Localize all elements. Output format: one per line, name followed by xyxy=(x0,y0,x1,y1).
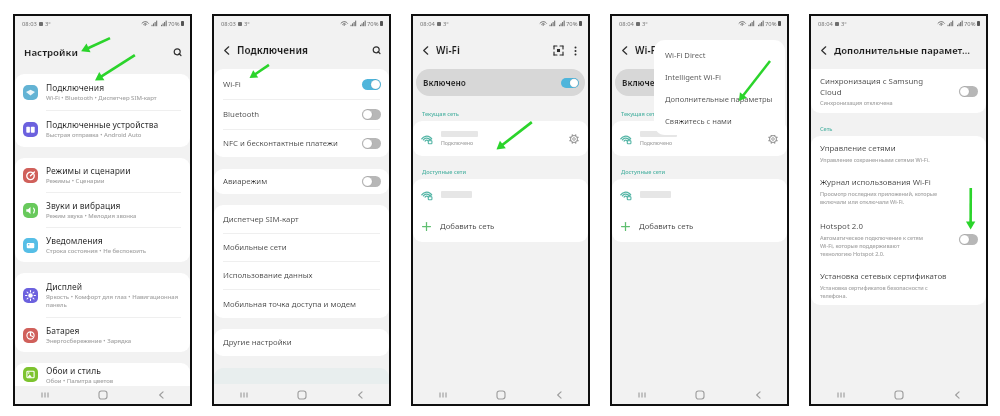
button[interactable]: Recent apps xyxy=(214,386,273,404)
staticText: 70% xyxy=(964,20,976,28)
button[interactable]: Recent apps xyxy=(811,386,870,404)
button[interactable]: Back xyxy=(618,44,631,57)
staticText: Свяжитесь с нами xyxy=(665,116,732,126)
staticText: Мобильная точка доступа и модем xyxy=(223,299,381,310)
button[interactable]: Подключения xyxy=(15,74,190,110)
button[interactable]: Toggle xyxy=(362,79,381,90)
button[interactable]: Использование данных xyxy=(214,262,389,289)
button[interactable]: Авиарежим xyxy=(214,169,389,194)
staticText: Диспетчер SIM-карт xyxy=(223,214,381,225)
staticText: Быстрая отправка • Android Auto xyxy=(46,131,142,139)
button[interactable]: Мобильная точка доступа и модем xyxy=(214,290,389,318)
button[interactable]: Включено xyxy=(615,69,784,96)
staticText: Wi-Fi xyxy=(223,79,362,90)
button[interactable]: Toggle xyxy=(362,138,381,149)
staticText: Дополнительные парамет… xyxy=(834,44,980,57)
button[interactable]: Добавить сеть xyxy=(612,210,787,242)
staticText: Синхронизация отключена xyxy=(820,99,893,106)
staticText: Bluetooth xyxy=(223,109,362,120)
button[interactable]: Диспетчер SIM-карт xyxy=(214,205,389,233)
button[interactable]: Другие настройки xyxy=(214,329,389,356)
button[interactable]: Свяжитесь с нами xyxy=(665,110,785,132)
staticText: Установка сертификатов безопасности с те… xyxy=(820,284,948,300)
staticText: Синхронизация с Samsung Cloud xyxy=(820,76,926,97)
button[interactable]: Toggle xyxy=(362,176,381,187)
button[interactable]: NFC и бесконтактные платежи xyxy=(214,130,389,157)
button[interactable]: Back xyxy=(729,386,787,404)
staticText: Сеть xyxy=(820,125,833,133)
button[interactable]: Recent apps xyxy=(413,386,472,404)
button[interactable]: Подключено xyxy=(612,121,787,156)
staticText: Авиарежим xyxy=(223,176,362,187)
button[interactable]: Подключенные устройства xyxy=(15,111,190,147)
staticText: Подключено xyxy=(441,139,474,146)
button[interactable]: Home xyxy=(671,386,729,404)
staticText: Настройки xyxy=(24,46,171,59)
button[interactable]: Back xyxy=(928,386,986,404)
staticText: Обои и стиль xyxy=(46,365,101,376)
staticText: Установка сетевых сертификатов xyxy=(820,271,947,282)
staticText: Включено xyxy=(423,77,561,88)
button[interactable]: Recent apps xyxy=(612,386,671,404)
button[interactable]: Back xyxy=(132,386,190,404)
staticText: 70% xyxy=(765,20,777,28)
button[interactable]: Звуки и вибрация xyxy=(15,193,190,227)
staticText: 3° xyxy=(244,20,250,28)
button[interactable]: Back xyxy=(530,386,588,404)
button[interactable]: Home xyxy=(870,386,928,404)
button[interactable]: Search xyxy=(370,44,383,57)
button[interactable]: Дисплей xyxy=(15,273,190,317)
button[interactable]: Включено xyxy=(416,69,585,96)
button[interactable]: Back xyxy=(419,44,432,57)
staticText: Hotspot 2.0 xyxy=(820,221,863,232)
button[interactable]: Back xyxy=(817,44,830,57)
button[interactable]: Wi-Fi xyxy=(214,69,389,99)
button[interactable]: Подключено xyxy=(413,121,588,156)
button[interactable]: Intelligent Wi-Fi xyxy=(665,66,785,88)
button[interactable]: Network settings xyxy=(767,133,779,145)
button[interactable]: Toggle xyxy=(362,109,381,120)
staticText: Обои • Палитра цветов xyxy=(46,377,114,385)
button[interactable]: Батарея xyxy=(15,318,190,352)
button[interactable]: Search xyxy=(171,46,184,59)
button[interactable]: Hotspot 2.0 xyxy=(811,212,986,266)
button[interactable]: Обои и стиль xyxy=(15,363,190,386)
button[interactable]: Back xyxy=(331,386,389,404)
button[interactable]: More options xyxy=(569,44,582,57)
button[interactable]: Управление сетями xyxy=(811,136,986,170)
staticText: Wi-Fi xyxy=(436,44,552,57)
button[interactable]: Дополнительные параметры xyxy=(665,88,785,110)
button[interactable]: Home xyxy=(273,386,331,404)
button[interactable]: Уведомления xyxy=(15,228,190,262)
button[interactable]: Recent apps xyxy=(15,386,74,404)
staticText: 08:03 xyxy=(22,20,37,28)
button[interactable]: Toggle xyxy=(959,86,978,97)
button[interactable]: Wi-Fi Direct xyxy=(665,43,785,66)
button[interactable]: Home xyxy=(472,386,530,404)
staticText: Другие настройки xyxy=(223,337,381,348)
staticText: Wi-Fi xyxy=(635,44,751,57)
button[interactable]: Toggle xyxy=(959,234,978,245)
staticText: Журнал использования Wi-Fi xyxy=(820,177,931,188)
staticText: Подключено xyxy=(640,139,673,146)
button[interactable]: Журнал использования Wi-Fi xyxy=(811,170,986,212)
button[interactable]: Синхронизация с Samsung Cloud xyxy=(811,69,986,113)
button[interactable] xyxy=(612,179,787,210)
staticText: 70% xyxy=(168,20,180,28)
button[interactable] xyxy=(413,179,588,210)
button[interactable]: Режимы и сценарии xyxy=(15,158,190,192)
button[interactable]: Scan QR code xyxy=(552,44,565,57)
button[interactable]: Back xyxy=(220,44,233,57)
button[interactable]: Мобильные сети xyxy=(214,234,389,261)
button[interactable]: Установка сетевых сертификатов xyxy=(811,266,986,305)
staticText: Intelligent Wi-Fi xyxy=(665,72,721,82)
staticText: Просмотр последних приложений, которые в… xyxy=(820,190,945,206)
button[interactable]: Toggle xyxy=(561,78,579,88)
button[interactable]: Network settings xyxy=(568,133,580,145)
button[interactable]: Bluetooth xyxy=(214,100,389,129)
button[interactable]: Добавить сеть xyxy=(413,210,588,242)
button[interactable]: Home xyxy=(74,386,132,404)
